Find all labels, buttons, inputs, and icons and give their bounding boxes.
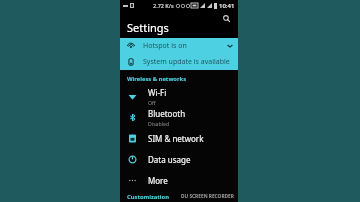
staticText: 2.72 K/s bbox=[153, 2, 174, 9]
button[interactable]: Data usage bbox=[120, 149, 238, 170]
button[interactable]: Wi-Fi bbox=[120, 86, 238, 107]
staticText: Hotspot is on bbox=[143, 41, 187, 51]
staticText: DU SCREEN RECORDER bbox=[181, 193, 234, 200]
button[interactable]: More bbox=[120, 170, 238, 191]
button[interactable]: System update is available bbox=[120, 54, 238, 70]
staticText: More bbox=[148, 175, 168, 186]
button[interactable]: Hotspot is on bbox=[120, 38, 238, 54]
button[interactable]: Bluetooth bbox=[120, 107, 238, 128]
staticText: Disabled bbox=[148, 120, 170, 127]
button[interactable]: Search bbox=[220, 12, 233, 25]
staticText: Wi-Fi bbox=[148, 87, 167, 98]
staticText: SIM & network bbox=[148, 133, 204, 144]
staticText: System update is available bbox=[143, 57, 230, 67]
button[interactable]: SIM & network bbox=[120, 128, 238, 149]
staticText: Wireless & networks bbox=[127, 75, 187, 83]
staticText: Settings bbox=[127, 20, 169, 35]
staticText: Bluetooth bbox=[148, 108, 186, 119]
staticText: 10:41 bbox=[219, 2, 235, 10]
staticText: Off bbox=[148, 99, 156, 106]
staticText: Customization bbox=[127, 193, 169, 201]
staticText: Data usage bbox=[148, 154, 191, 165]
